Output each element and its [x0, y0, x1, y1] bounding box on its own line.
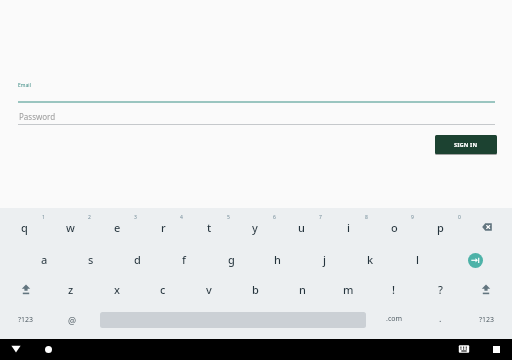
staticText: ! — [392, 282, 396, 297]
button[interactable] — [36, 339, 60, 359]
button[interactable] — [4, 339, 28, 359]
button[interactable]: f — [163, 245, 205, 273]
staticText: 8 — [365, 214, 368, 221]
staticText: u — [298, 220, 305, 235]
button[interactable]: w — [49, 213, 91, 241]
staticText: 2 — [88, 214, 91, 221]
button[interactable]: p — [419, 213, 461, 241]
staticText: Password — [19, 111, 56, 122]
button[interactable]: .com — [373, 306, 415, 332]
button[interactable]: j — [303, 245, 345, 273]
staticText: v — [206, 282, 212, 297]
button[interactable]: ? — [419, 275, 461, 303]
button[interactable]: x — [96, 275, 138, 303]
staticText: ?123 — [479, 315, 495, 325]
staticText: b — [252, 282, 259, 297]
button[interactable]: k — [349, 245, 391, 273]
staticText: d — [134, 252, 141, 267]
button[interactable]: n — [281, 275, 323, 303]
button[interactable]: e — [96, 213, 138, 241]
button[interactable] — [18, 88, 495, 103]
staticText: e — [114, 220, 121, 235]
staticText: n — [299, 282, 306, 297]
staticText: 7 — [319, 214, 322, 221]
button[interactable]: b — [234, 275, 276, 303]
staticText: o — [391, 220, 398, 235]
button[interactable]: a — [23, 245, 65, 273]
staticText: a — [41, 252, 48, 267]
staticText: Email — [18, 82, 31, 89]
staticText: x — [114, 282, 120, 297]
button[interactable] — [5, 275, 47, 303]
staticText: l — [416, 252, 419, 267]
button[interactable]: ! — [373, 275, 415, 303]
staticText: s — [88, 252, 94, 267]
button[interactable]: u — [280, 213, 322, 241]
staticText: r — [161, 220, 166, 235]
button[interactable] — [465, 275, 507, 303]
staticText: q — [21, 220, 28, 235]
staticText: c — [160, 282, 166, 297]
button[interactable]: i — [327, 213, 369, 241]
button[interactable]: g — [210, 245, 252, 273]
button[interactable]: s — [70, 245, 112, 273]
staticText: 4 — [180, 214, 183, 221]
staticText: j — [323, 252, 326, 267]
staticText: g — [228, 252, 235, 267]
staticText: i — [347, 220, 350, 235]
staticText: SIGN IN — [454, 141, 478, 149]
button[interactable]: Password — [18, 108, 495, 124]
button[interactable]: q — [3, 213, 45, 241]
button[interactable]: z — [50, 275, 92, 303]
staticText: 3 — [134, 214, 137, 221]
staticText: y — [252, 220, 258, 235]
button[interactable]: v — [188, 275, 230, 303]
button[interactable]: r — [142, 213, 184, 241]
staticText: ? — [438, 282, 443, 297]
staticText: w — [66, 220, 75, 235]
button[interactable] — [452, 339, 476, 359]
button[interactable] — [484, 339, 508, 359]
button[interactable]: t — [188, 213, 230, 241]
button[interactable]: l — [396, 245, 438, 273]
staticText: .com — [386, 314, 403, 324]
button[interactable]: m — [327, 275, 369, 303]
button[interactable]: d — [116, 245, 158, 273]
button[interactable]: @ — [51, 307, 93, 333]
button[interactable]: c — [142, 275, 184, 303]
button[interactable]: ?123 — [466, 307, 508, 333]
button[interactable]: h — [256, 245, 298, 273]
button[interactable] — [461, 246, 489, 274]
button[interactable]: y — [234, 213, 276, 241]
button[interactable]: ?123 — [5, 307, 47, 333]
staticText: @ — [68, 314, 77, 326]
staticText: ?123 — [18, 315, 34, 325]
button[interactable]: SIGN IN — [435, 135, 497, 154]
button[interactable]: o — [373, 213, 415, 241]
staticText: h — [274, 252, 281, 267]
staticText: . — [439, 312, 442, 324]
staticText: m — [343, 282, 354, 297]
button[interactable]: . — [419, 305, 461, 331]
button[interactable] — [466, 213, 508, 241]
staticText: 6 — [273, 214, 276, 221]
staticText: 9 — [411, 214, 414, 221]
staticText: 5 — [227, 214, 230, 221]
staticText: k — [367, 252, 374, 267]
staticText: 0 — [458, 214, 461, 221]
staticText: z — [68, 282, 74, 297]
staticText: p — [437, 220, 444, 235]
staticText: f — [182, 252, 186, 267]
staticText: t — [207, 220, 212, 235]
staticText: 1 — [42, 214, 45, 221]
